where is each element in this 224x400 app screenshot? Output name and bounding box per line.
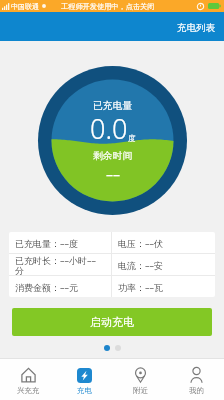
- button[interactable]: Charging: [56, 362, 112, 400]
- staticText: 充电: [77, 386, 92, 395]
- staticText: 剩余时间: [93, 150, 133, 162]
- other: Charging: [77, 367, 92, 383]
- button[interactable]: 启动充电: [12, 308, 212, 336]
- staticText: 兴充充: [17, 386, 40, 395]
- other: Profile: [189, 367, 204, 383]
- other: Home: [21, 367, 36, 383]
- staticText: 工程师开发使用中，点击关闭: [61, 2, 155, 11]
- staticText: 电压：––伏: [118, 237, 164, 249]
- staticText: 电流：––安: [118, 259, 164, 271]
- staticText: 已充电量：––度: [15, 237, 79, 249]
- staticText: 0.0: [90, 110, 128, 147]
- button[interactable]: Nearby: [112, 362, 168, 400]
- staticText: 充电列表: [177, 22, 215, 34]
- staticText: 中国联通: [11, 2, 39, 11]
- staticText: 已充电量: [93, 100, 133, 112]
- staticText: 附近: [133, 386, 148, 395]
- staticText: 已充时长：––小时––分: [15, 254, 102, 275]
- staticText: 功率：––瓦: [118, 281, 164, 293]
- staticText: ––: [106, 165, 120, 184]
- button[interactable]: 充电列表: [165, 17, 224, 39]
- button[interactable]: Home: [0, 362, 56, 400]
- button[interactable]: Profile: [168, 362, 224, 400]
- other: Nearby: [133, 367, 148, 383]
- staticText: 我的: [189, 386, 204, 395]
- staticText: 消费金额：––元: [15, 281, 79, 293]
- staticText: 启动充电: [90, 315, 134, 329]
- staticText: 度: [128, 134, 136, 143]
